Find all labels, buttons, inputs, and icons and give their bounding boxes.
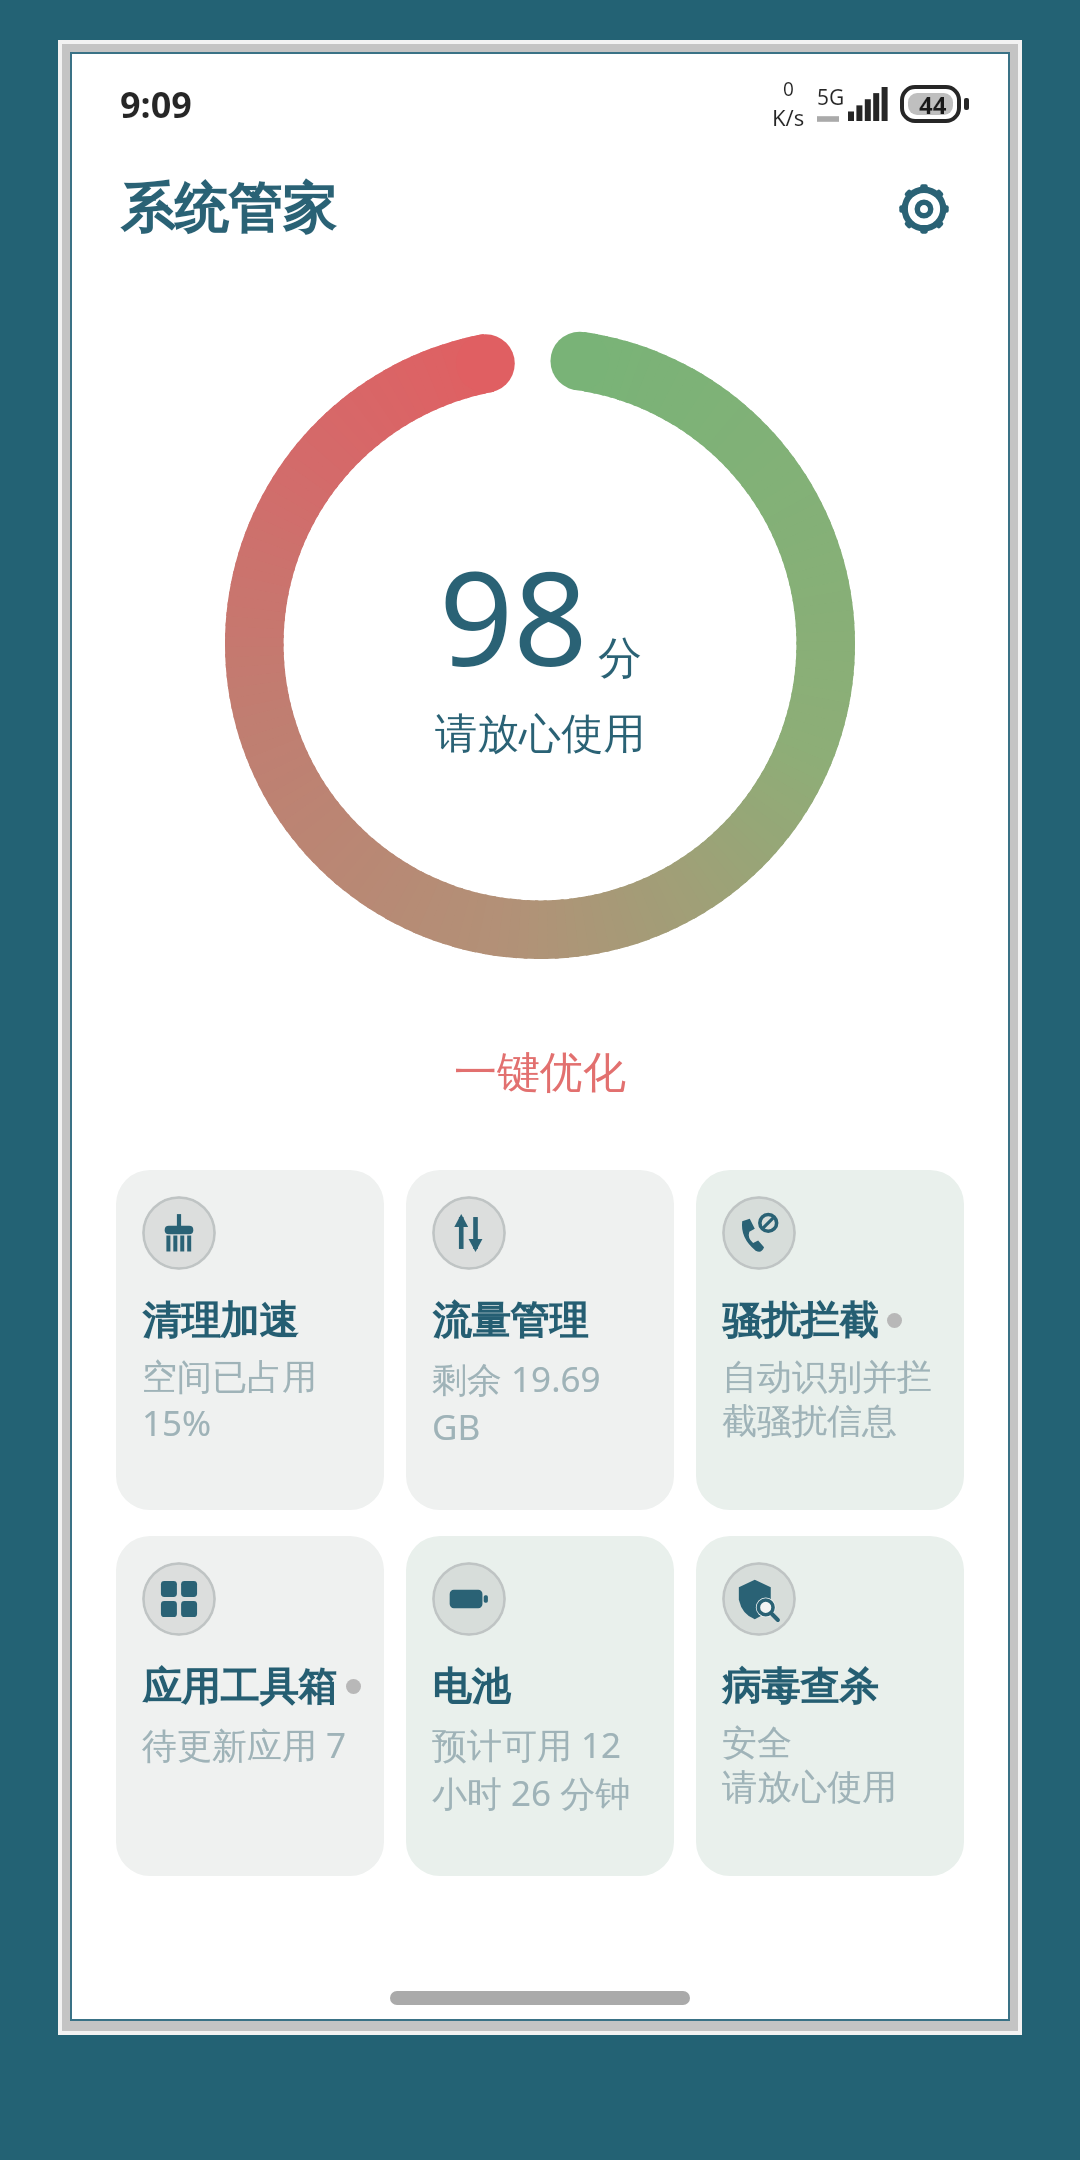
- staticText: 应用工具箱: [142, 1662, 337, 1711]
- staticText: 分: [598, 631, 642, 686]
- staticText: GB: [432, 1403, 481, 1451]
- staticText: 系统管家: [120, 175, 336, 243]
- staticText: 44: [919, 88, 947, 121]
- staticText: 流量管理: [432, 1296, 588, 1345]
- staticText: 小时 26 分钟: [432, 1769, 631, 1817]
- button[interactable]: 骚扰拦截: [696, 1170, 964, 1510]
- staticText: K/s: [772, 102, 805, 132]
- staticText: 预计可用 12: [432, 1721, 622, 1769]
- button[interactable]: 病毒查杀: [696, 1536, 964, 1876]
- staticText: 病毒查杀: [722, 1662, 878, 1711]
- staticText: 自动识别并拦: [722, 1355, 932, 1399]
- staticText: 15%: [142, 1399, 212, 1447]
- staticText: 骚扰拦截: [722, 1296, 878, 1345]
- staticText: 清理加速: [142, 1296, 298, 1345]
- button[interactable]: 应用工具箱: [116, 1536, 384, 1876]
- button[interactable]: 一键优化: [72, 1046, 1008, 1100]
- staticText: 9:09: [120, 80, 192, 129]
- staticText: 剩余 19.69: [432, 1355, 601, 1403]
- staticText: 请放心使用: [722, 1765, 897, 1809]
- staticText: 待更新应用 7: [142, 1721, 347, 1769]
- staticText: 98: [439, 527, 588, 704]
- staticText: 请放心使用: [435, 708, 645, 761]
- button[interactable]: 流量管理: [406, 1170, 674, 1510]
- staticText: 安全: [722, 1721, 792, 1765]
- button[interactable]: 电池: [406, 1536, 674, 1876]
- staticText: 0: [783, 76, 794, 102]
- staticText: 电池: [432, 1662, 510, 1711]
- staticText: 截骚扰信息: [722, 1399, 897, 1443]
- staticText: 5G: [817, 83, 845, 112]
- button[interactable]: Settings: [884, 169, 964, 249]
- staticText: 空间已占用: [142, 1355, 317, 1399]
- button[interactable]: 清理加速: [116, 1170, 384, 1510]
